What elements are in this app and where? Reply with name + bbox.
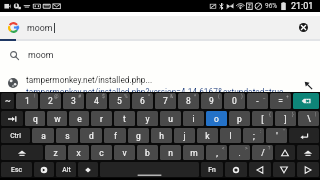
button[interactable]: 0: [224, 93, 245, 109]
button[interactable]: z: [45, 145, 66, 160]
button[interactable]: e: [69, 111, 89, 126]
staticText: Alt: [62, 166, 71, 174]
staticText: *: [194, 93, 197, 99]
staticText: /: [261, 148, 265, 158]
staticText: 8: [186, 96, 191, 106]
button[interactable]: [289, 128, 319, 143]
button[interactable]: f: [104, 128, 126, 143]
staticText: ): [241, 93, 243, 99]
staticText: 96%: [265, 2, 278, 10]
staticText: 21:01: [291, 1, 314, 12]
staticText: w: [54, 114, 61, 124]
staticText: 0: [232, 96, 237, 106]
staticText: ": [283, 128, 285, 134]
button[interactable]: i: [183, 111, 204, 126]
button[interactable]: b: [137, 145, 158, 160]
button[interactable]: Clear query: [299, 23, 308, 32]
button[interactable]: x: [68, 145, 89, 160]
button[interactable]: r: [91, 111, 112, 126]
button[interactable]: [: [252, 111, 273, 126]
button[interactable]: k: [197, 128, 218, 143]
button[interactable]: \: [298, 111, 319, 126]
button[interactable]: c: [91, 145, 112, 160]
button[interactable]: d: [80, 128, 102, 143]
button[interactable]: tampermonkey.net/installed.php...: [0, 70, 320, 94]
button[interactable]: p: [229, 111, 250, 126]
button[interactable]: [34, 162, 54, 177]
button[interactable]: [293, 93, 319, 109]
button[interactable]: ': [266, 128, 287, 143]
button[interactable]: Esc: [1, 162, 32, 177]
button[interactable]: h: [151, 128, 172, 143]
button[interactable]: g: [128, 128, 149, 143]
button[interactable]: j: [174, 128, 195, 143]
staticText: =: [278, 96, 283, 106]
button[interactable]: [273, 162, 295, 177]
button[interactable]: 8: [178, 93, 199, 109]
button[interactable]: n: [160, 145, 181, 160]
button[interactable]: =: [270, 93, 291, 109]
staticText: }: [292, 111, 294, 117]
staticText: m: [190, 148, 198, 158]
button[interactable]: u: [160, 111, 181, 126]
staticText: b: [145, 148, 150, 158]
staticText: 5: [117, 96, 122, 106]
staticText: moom: [28, 50, 54, 60]
staticText: ': [276, 131, 278, 141]
staticText: k: [205, 131, 210, 141]
button[interactable]: v: [114, 145, 135, 160]
button[interactable]: l: [220, 128, 241, 143]
button[interactable]: -: [247, 93, 268, 109]
staticText: ^: [148, 93, 151, 99]
button[interactable]: o: [206, 111, 227, 126]
button[interactable]: 4: [86, 93, 107, 109]
button[interactable]: [1, 111, 23, 126]
staticText: +: [286, 93, 289, 99]
button[interactable]: [297, 162, 319, 177]
button[interactable]: q: [25, 111, 45, 126]
button[interactable]: [78, 162, 98, 177]
button[interactable]: 6: [132, 93, 153, 109]
button[interactable]: Fn: [201, 162, 223, 177]
staticText: Fn: [208, 166, 216, 174]
staticText: .: [238, 148, 241, 158]
button[interactable]: w: [47, 111, 67, 126]
button[interactable]: Alt: [56, 162, 76, 177]
button[interactable]: [100, 162, 199, 177]
button[interactable]: t: [114, 111, 135, 126]
button[interactable]: m: [183, 145, 204, 160]
staticText: %: [124, 93, 128, 99]
button[interactable]: a: [32, 128, 54, 143]
button[interactable]: moom: [0, 41, 320, 69]
button[interactable]: 9: [201, 93, 222, 109]
button[interactable]: ,: [206, 145, 227, 160]
button[interactable]: [1, 145, 43, 160]
button[interactable]: 1: [16, 93, 38, 109]
button[interactable]: moom: [0, 16, 320, 39]
staticText: 6: [140, 96, 145, 106]
button[interactable]: ;: [243, 128, 264, 143]
button[interactable]: 3: [63, 93, 84, 109]
button[interactable]: /: [252, 145, 273, 160]
staticText: g: [136, 131, 141, 141]
button[interactable]: [225, 162, 247, 177]
button[interactable]: y: [137, 111, 158, 126]
staticText: -: [256, 96, 259, 106]
button[interactable]: Ctrl: [1, 128, 30, 143]
staticText: y: [145, 114, 150, 124]
button[interactable]: [297, 145, 319, 160]
staticText: c: [99, 148, 104, 158]
button[interactable]: 5: [109, 93, 130, 109]
button[interactable]: s: [56, 128, 78, 143]
button[interactable]: [249, 162, 271, 177]
button[interactable]: 7: [155, 93, 176, 109]
staticText: j: [183, 131, 186, 141]
button[interactable]: Insert suggestion: [304, 81, 313, 90]
button[interactable]: ]: [275, 111, 296, 126]
staticText: (: [218, 93, 220, 99]
button[interactable]: .: [229, 145, 250, 160]
staticText: tampermonkey.net/installed.php...: [26, 75, 153, 85]
button[interactable]: [275, 145, 295, 160]
button[interactable]: 2: [40, 93, 61, 109]
button[interactable]: ~: [1, 93, 14, 109]
